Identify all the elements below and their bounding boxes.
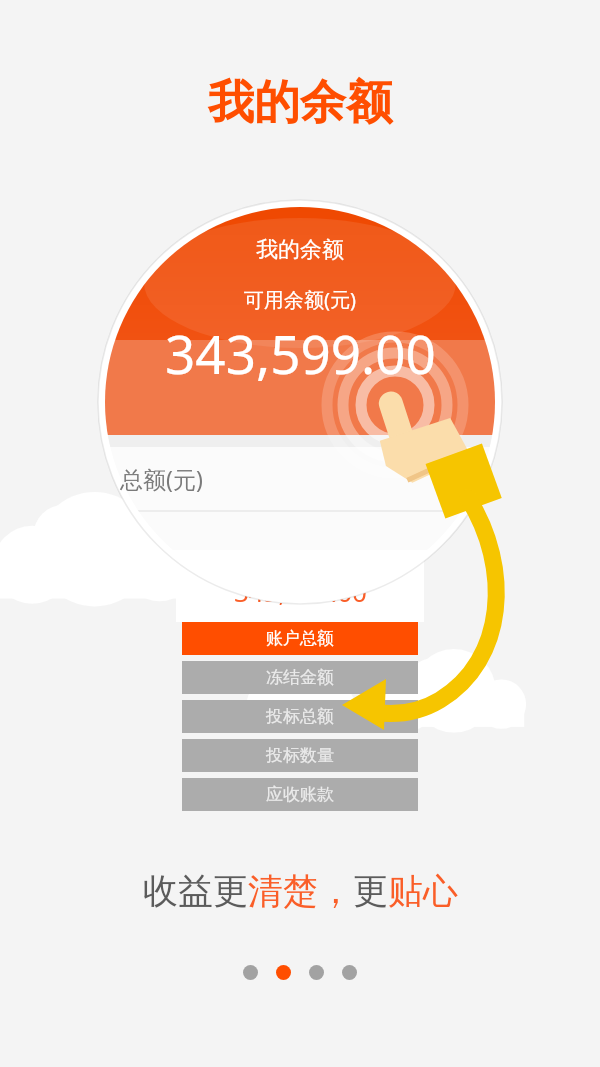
staticText: 清楚， xyxy=(248,869,353,913)
staticText: 更 xyxy=(353,869,388,913)
button[interactable]: 应收账款 xyxy=(182,778,418,811)
staticText: 总额(元) xyxy=(120,463,203,494)
staticText: 投标数量 xyxy=(266,745,334,766)
staticText: 账户总额 xyxy=(266,628,334,649)
button[interactable] xyxy=(276,965,291,980)
button[interactable]: 账户总额 xyxy=(182,622,418,655)
button[interactable]: 投标总额 xyxy=(182,700,418,733)
staticText: 冻结金额 xyxy=(266,667,334,688)
staticText: 可用余额(元) xyxy=(244,286,356,313)
button[interactable] xyxy=(342,965,357,980)
staticText: 收益更 xyxy=(143,869,248,913)
staticText: 贴心 xyxy=(388,869,458,913)
staticText: 投标总额 xyxy=(266,706,334,727)
other: Tap balance xyxy=(352,390,492,510)
staticText: 343,599.00 xyxy=(234,574,367,609)
staticText: 343,599.00 xyxy=(165,317,436,389)
button[interactable]: 冻结金额 xyxy=(182,661,418,694)
staticText: 我的余额 xyxy=(256,236,344,264)
staticText: 应收账款 xyxy=(266,784,334,805)
button[interactable] xyxy=(243,965,258,980)
button[interactable]: 投标数量 xyxy=(182,739,418,772)
staticText: 我的余额 xyxy=(208,74,392,132)
button[interactable] xyxy=(309,965,324,980)
